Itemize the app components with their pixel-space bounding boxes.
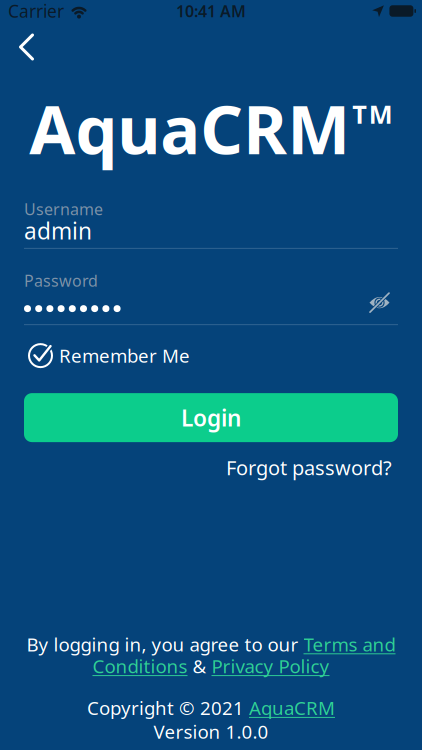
- staticText: 10:41 AM: [176, 0, 246, 22]
- staticText: Carrier: [8, 0, 64, 22]
- staticText: Privacy Policy: [211, 654, 329, 678]
- staticText: &: [187, 654, 211, 678]
- staticText: AquaCRM: [29, 84, 350, 172]
- staticText: admin: [24, 216, 92, 246]
- staticText: Login: [181, 403, 241, 433]
- staticText: Remember Me: [59, 343, 190, 368]
- staticText: T: [352, 97, 367, 131]
- staticText: M: [369, 97, 393, 131]
- button[interactable]: Privacy Policy: [211, 654, 329, 678]
- button[interactable]: Forgot password?: [226, 454, 392, 481]
- button[interactable]: Login: [24, 393, 398, 442]
- button[interactable]: Show password: [369, 292, 422, 325]
- staticText: Username: [24, 198, 103, 220]
- staticText: AquaCRM: [249, 695, 335, 720]
- button[interactable]: Remember Me: [0, 343, 190, 368]
- staticText: Terms and: [303, 632, 395, 657]
- staticText: Copyright © 2021: [87, 695, 249, 720]
- staticText: Conditions: [92, 654, 187, 678]
- staticText: Forgot password?: [226, 454, 392, 481]
- staticText: By logging in, you agree to our: [26, 632, 303, 657]
- staticText: Version 1.0.0: [153, 719, 268, 744]
- button[interactable]: Terms and: [303, 632, 395, 657]
- button[interactable]: Password: [24, 249, 398, 325]
- button[interactable]: Back: [0, 31, 45, 63]
- button[interactable]: AquaCRM: [249, 695, 335, 720]
- button[interactable]: Conditions: [92, 654, 187, 678]
- button[interactable]: Username: [24, 198, 398, 249]
- staticText: Password: [24, 270, 98, 291]
